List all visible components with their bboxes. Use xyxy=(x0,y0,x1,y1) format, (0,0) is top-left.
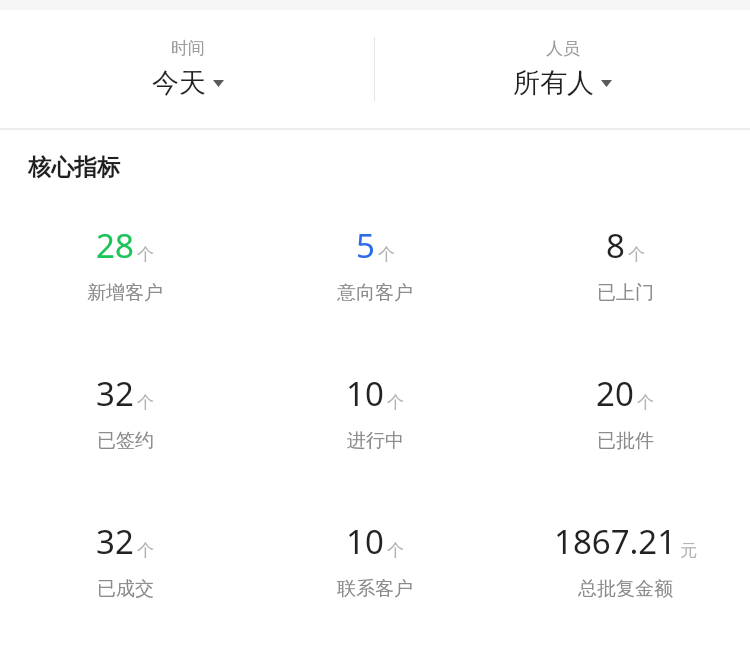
button[interactable]: 10 xyxy=(250,371,500,453)
button[interactable]: 10 xyxy=(250,519,500,601)
staticText: 5 xyxy=(356,223,375,268)
staticText: 联系客户 xyxy=(337,577,413,601)
staticText: 今天 xyxy=(152,66,206,100)
button[interactable]: 时间 xyxy=(152,38,224,100)
staticText: 32 xyxy=(96,371,134,416)
staticText: 元 xyxy=(680,540,697,561)
staticText: 32 xyxy=(96,519,134,564)
staticText: 1867.21 xyxy=(554,519,677,564)
staticText: 10 xyxy=(346,371,384,416)
staticText: 总批复金额 xyxy=(578,577,673,601)
staticText: 个 xyxy=(137,244,154,265)
staticText: 已上门 xyxy=(597,281,654,305)
staticText: 个 xyxy=(137,392,154,413)
button[interactable]: 20 xyxy=(500,371,750,453)
staticText: 已成交 xyxy=(97,577,154,601)
button[interactable]: 32 xyxy=(0,371,250,453)
staticText: 个 xyxy=(137,540,154,561)
staticText: 个 xyxy=(628,244,645,265)
button[interactable]: 5 xyxy=(250,223,500,305)
staticText: 意向客户 xyxy=(337,281,413,305)
button[interactable]: 8 xyxy=(500,223,750,305)
staticText: 人员 xyxy=(546,38,580,59)
staticText: 10 xyxy=(346,519,384,564)
staticText: 8 xyxy=(606,223,625,268)
staticText: 个 xyxy=(387,392,404,413)
staticText: 个 xyxy=(637,392,654,413)
staticText: 个 xyxy=(387,540,404,561)
staticText: 个 xyxy=(378,244,395,265)
staticText: 已批件 xyxy=(597,429,654,453)
staticText: 时间 xyxy=(171,38,205,59)
button[interactable]: 人员 xyxy=(513,38,612,100)
staticText: 所有人 xyxy=(513,66,594,100)
staticText: 28 xyxy=(96,223,134,268)
staticText: 进行中 xyxy=(347,429,404,453)
button[interactable]: 1867.21 xyxy=(500,519,750,601)
staticText: 新增客户 xyxy=(87,281,163,305)
staticText: 核心指标 xyxy=(28,153,120,182)
button[interactable]: 32 xyxy=(0,519,250,601)
button[interactable]: 28 xyxy=(0,223,250,305)
staticText: 20 xyxy=(596,371,634,416)
staticText: 已签约 xyxy=(97,429,154,453)
